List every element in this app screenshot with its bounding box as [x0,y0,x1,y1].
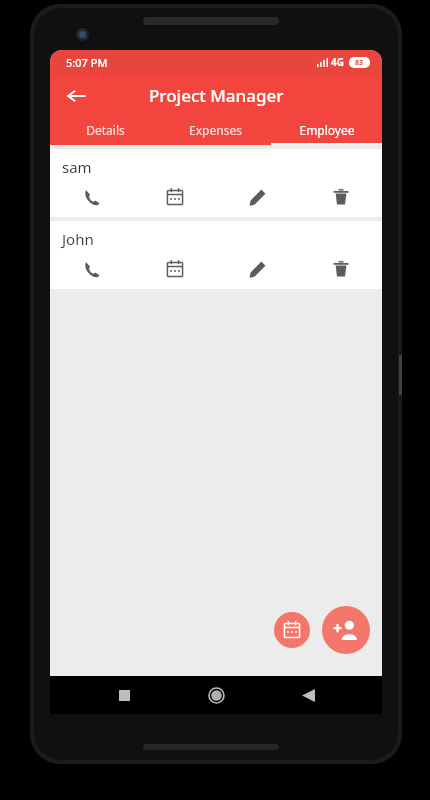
button[interactable]: Edit [216,177,299,217]
staticText: Expenses [189,122,242,138]
button[interactable]: Recents [106,677,142,713]
button[interactable]: Home [198,677,234,713]
button[interactable]: Schedule [133,249,216,289]
button[interactable]: Schedule [274,612,310,648]
staticText: 83 [355,58,364,68]
button[interactable]: Details [50,117,160,143]
button[interactable]: Expenses [160,117,271,143]
button[interactable]: Delete [299,177,382,217]
staticText: sam [62,157,92,177]
staticText: Details [86,122,125,138]
button[interactable]: Back [290,677,326,713]
button[interactable]: Employee [271,117,382,143]
button[interactable]: Back [60,80,92,112]
staticText: John [62,229,94,249]
button[interactable]: Edit [216,249,299,289]
staticText: Project Manager [149,84,284,107]
button[interactable]: Schedule [133,177,216,217]
button[interactable]: Add employee [322,606,370,654]
staticText: Employee [299,122,355,138]
staticText: 5:07 PM [66,55,108,70]
button[interactable]: Call [50,249,133,289]
button[interactable]: Call [50,177,133,217]
staticText: 4G [331,55,344,69]
button[interactable]: Delete [299,249,382,289]
